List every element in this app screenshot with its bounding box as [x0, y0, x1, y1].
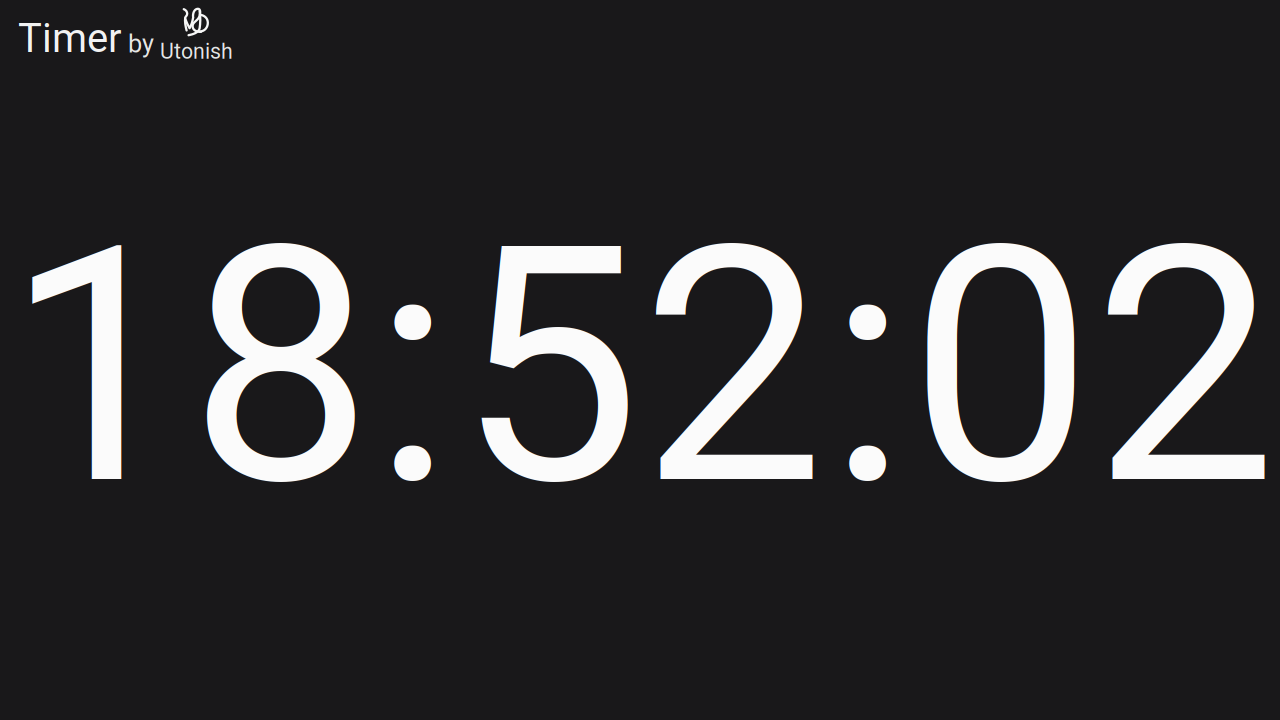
button[interactable]: by Utonish	[126, 3, 238, 65]
staticText: 52	[457, 176, 825, 559]
staticText: 18	[5, 176, 373, 559]
staticText: :	[828, 176, 907, 559]
staticText: :	[373, 176, 452, 559]
button[interactable]: 18:52:02 — tap to pause	[0, 80, 1280, 720]
staticText: by	[128, 29, 154, 59]
staticText: Timer	[18, 15, 122, 62]
staticText: 02	[909, 176, 1277, 559]
staticText: Utonish	[160, 39, 233, 64]
